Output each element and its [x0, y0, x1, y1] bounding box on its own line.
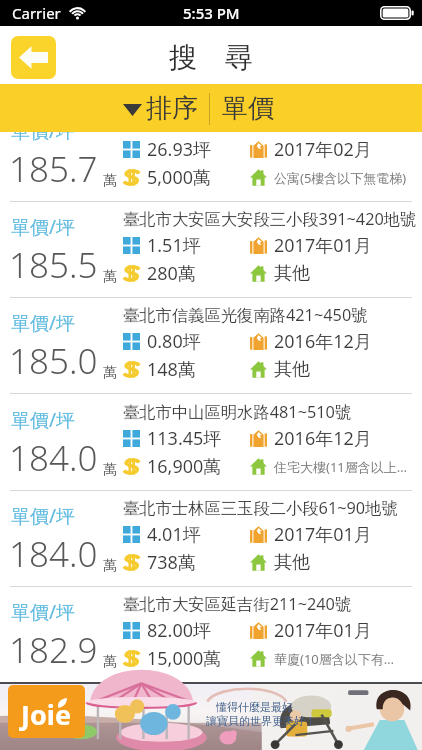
staticText: 113.45坪 — [147, 426, 222, 451]
staticText: 182.9 — [9, 626, 98, 674]
staticText: 82.00坪 — [147, 618, 212, 643]
staticText: 15,000萬 — [147, 646, 222, 671]
staticText: 萬 — [103, 364, 117, 382]
staticText: 單價/坪 — [11, 599, 76, 625]
staticText: 26.93坪 — [147, 137, 212, 162]
staticText: 萬 — [103, 557, 117, 575]
staticText: 搜 尋 — [169, 37, 253, 75]
staticText: 185.7 — [9, 145, 98, 193]
button[interactable]: 單價 — [222, 92, 274, 125]
staticText: 5,000萬 — [147, 165, 212, 190]
staticText: 臺北市士林區三玉段二小段61~90地號 — [123, 497, 398, 519]
staticText: Joie — [21, 696, 72, 733]
staticText: 其他 — [274, 358, 310, 381]
staticText: 華廈(10層含以下有… — [274, 650, 395, 668]
staticText: 2016年12月 — [274, 426, 372, 451]
staticText: 讓寶貝的世界更美好！ — [206, 714, 316, 728]
staticText: 4.01坪 — [147, 522, 201, 547]
staticText: 單價/坪 — [11, 407, 76, 433]
staticText: 臺北市中山區明水路481~510號 — [123, 401, 352, 423]
staticText: 185.0 — [9, 337, 98, 385]
staticText: 臺北市大安區大安段三小段391~420地號 — [123, 208, 417, 230]
button[interactable]: 單價/坪 — [0, 132, 422, 202]
staticText: 公寓(5樓含以下無電梯) — [274, 169, 407, 187]
button[interactable]: Advertisement — [0, 682, 422, 750]
staticText: 184.0 — [9, 530, 98, 578]
staticText: 其他 — [274, 262, 310, 285]
staticText: 懂得什麼是最好 — [216, 700, 293, 714]
staticText: Carrier — [12, 3, 61, 23]
staticText: 184.0 — [9, 434, 98, 482]
staticText: 臺北市大安區延吉街211~240號 — [123, 593, 352, 615]
staticText: 單價/坪 — [11, 132, 76, 144]
staticText: 2017年01月 — [274, 233, 372, 258]
staticText: 萬 — [103, 461, 117, 479]
button[interactable]: 單價/坪 — [0, 298, 422, 394]
staticText: 2017年01月 — [274, 618, 372, 643]
staticText: 2017年01月 — [274, 522, 372, 547]
staticText: 單價/坪 — [11, 310, 76, 336]
button[interactable]: 單價/坪 — [0, 587, 422, 682]
staticText: 萬 — [103, 653, 117, 671]
button[interactable]: 單價/坪 — [0, 202, 422, 298]
staticText: 185.5 — [9, 241, 98, 289]
staticText: 2017年02月 — [274, 137, 372, 162]
staticText: 排序 — [146, 92, 198, 125]
staticText: 5:53 PM — [183, 3, 240, 23]
staticText: 1.51坪 — [147, 233, 201, 258]
staticText: 280萬 — [147, 261, 196, 286]
staticText: 萬 — [103, 268, 117, 286]
button[interactable]: 單價/坪 — [0, 395, 422, 491]
staticText: 2016年12月 — [274, 329, 372, 354]
staticText: 住宅大樓(11層含以上… — [274, 458, 408, 476]
button[interactable]: 單價/坪 — [0, 491, 422, 587]
staticText: 16,900萬 — [147, 454, 222, 479]
staticText: 萬 — [103, 172, 117, 190]
staticText: 148萬 — [147, 357, 196, 382]
button[interactable]: Back — [11, 36, 56, 79]
staticText: 738萬 — [147, 550, 196, 575]
staticText: 單價/坪 — [11, 214, 76, 240]
staticText: 臺北市信義區光復南路421~450號 — [123, 304, 368, 326]
staticText: 其他 — [274, 551, 310, 574]
staticText: 單價/坪 — [11, 503, 76, 529]
button[interactable]: 排序 — [123, 92, 198, 125]
staticText: 0.80坪 — [147, 329, 201, 354]
